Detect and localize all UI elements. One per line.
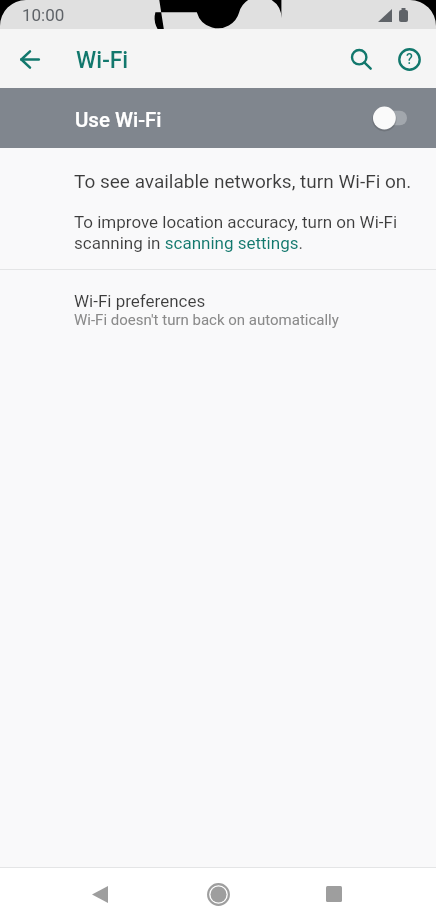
button[interactable]: Wi-Fi preferences	[0, 270, 436, 345]
staticText: Wi-Fi doesn't turn back on automatically	[74, 311, 339, 329]
staticText: To improve location accuracy, turn on Wi…	[74, 212, 402, 253]
staticText: 10:00	[22, 5, 65, 25]
staticText: Use Wi-Fi	[75, 108, 162, 132]
button[interactable]: Help	[385, 35, 433, 83]
button[interactable]: Back	[72, 868, 128, 920]
button[interactable]: Recents	[306, 868, 362, 920]
staticText: Wi-Fi	[76, 47, 129, 74]
button[interactable]: Use Wi-Fi	[0, 88, 436, 148]
button[interactable]: Search	[337, 35, 385, 83]
button[interactable]: Home	[190, 868, 246, 920]
button[interactable]: Back	[8, 37, 52, 81]
staticText: To see available networks, turn Wi-Fi on…	[74, 170, 412, 192]
staticText: Wi-Fi preferences	[74, 291, 206, 311]
staticText: ?	[406, 51, 413, 67]
